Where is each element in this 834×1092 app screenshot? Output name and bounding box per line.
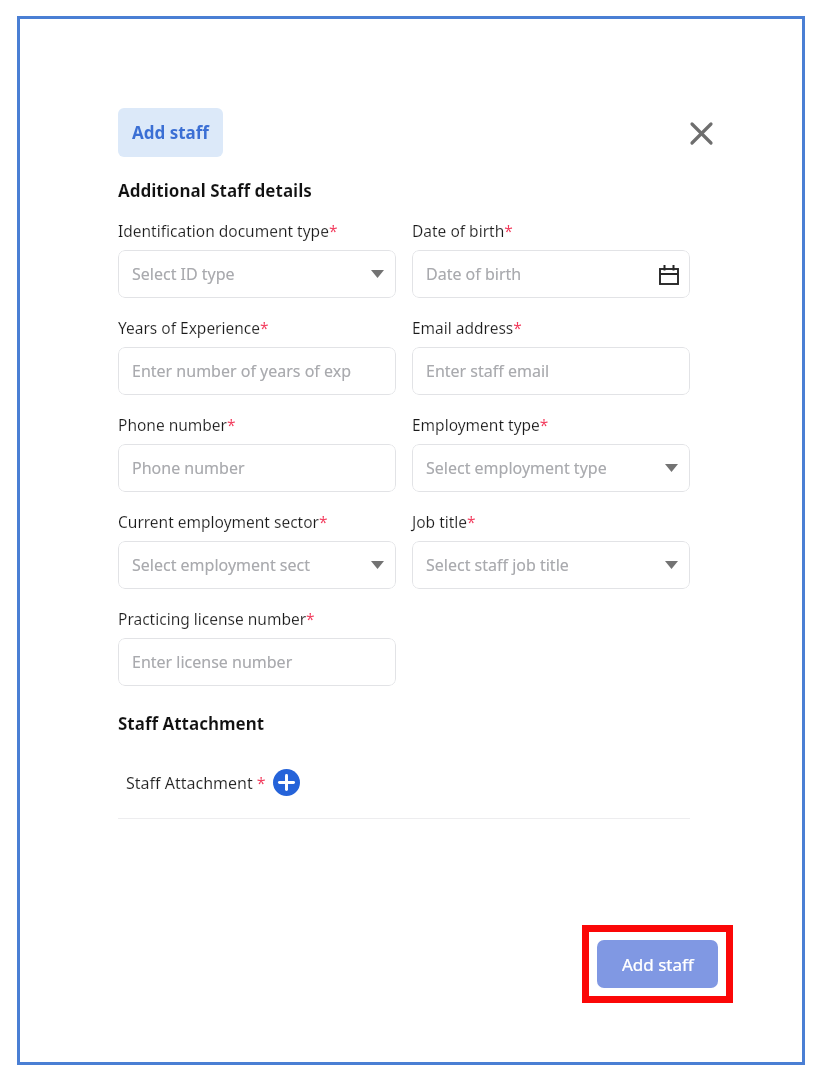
- button[interactable]: Enter license number: [118, 638, 396, 686]
- staticText: Date of birth: [426, 263, 522, 285]
- staticText: Employment type*: [412, 414, 549, 435]
- staticText: Current employment sector*: [118, 511, 328, 532]
- button[interactable]: Date of birth: [412, 250, 690, 298]
- staticText: Years of Experience*: [118, 317, 269, 338]
- staticText: Select ID type: [132, 263, 235, 285]
- button[interactable]: Enter number of years of exp: [118, 347, 396, 395]
- button[interactable]: Select employment type: [412, 444, 690, 492]
- staticText: Staff Attachment *: [126, 772, 266, 794]
- staticText: Add staff: [622, 953, 694, 976]
- button[interactable]: Select staff job title: [412, 541, 690, 589]
- staticText: Select employment type: [426, 457, 607, 479]
- staticText: Select employment sect: [132, 554, 311, 576]
- staticText: Date of birth*: [412, 220, 513, 241]
- staticText: Identification document type*: [118, 220, 338, 241]
- staticText: Job title*: [412, 511, 476, 532]
- staticText: Email address*: [412, 317, 522, 338]
- other: Add attachment: [273, 769, 300, 796]
- staticText: Phone number*: [118, 414, 236, 435]
- staticText: Phone number: [132, 457, 245, 479]
- button[interactable]: Close: [684, 116, 718, 150]
- staticText: Enter staff email: [426, 360, 550, 382]
- staticText: Select staff job title: [426, 554, 569, 576]
- button[interactable]: Select ID type: [118, 250, 396, 298]
- staticText: Enter number of years of exp: [132, 360, 352, 382]
- button[interactable]: Staff Attachment *: [126, 769, 300, 796]
- button[interactable]: Add staff: [597, 940, 718, 988]
- staticText: Staff Attachment: [118, 712, 265, 735]
- button[interactable]: Select employment sect: [118, 541, 396, 589]
- button[interactable]: Enter staff email: [412, 347, 690, 395]
- staticText: Practicing license number*: [118, 608, 315, 629]
- staticText: Additional Staff details: [118, 179, 312, 202]
- staticText: Add staff: [132, 121, 209, 144]
- button[interactable]: Add staff: [118, 108, 223, 157]
- staticText: Enter license number: [132, 651, 293, 673]
- button[interactable]: Phone number: [118, 444, 396, 492]
